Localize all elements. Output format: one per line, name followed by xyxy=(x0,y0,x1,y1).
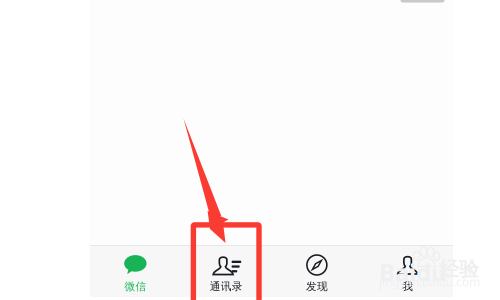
button[interactable]: 微信 xyxy=(90,245,181,297)
staticText: 通讯录 xyxy=(210,280,243,293)
staticText: jingyan.baidu.com xyxy=(379,274,480,290)
staticText: Baidu xyxy=(379,256,447,288)
staticText: 发现 xyxy=(306,280,328,293)
staticText: 我 xyxy=(402,280,413,293)
staticText: 经验 xyxy=(439,257,479,282)
staticText: 微信 xyxy=(124,280,146,293)
button[interactable]: 发现 xyxy=(271,245,362,297)
button[interactable]: 我 xyxy=(362,245,453,297)
button[interactable]: 通讯录 xyxy=(181,245,272,297)
